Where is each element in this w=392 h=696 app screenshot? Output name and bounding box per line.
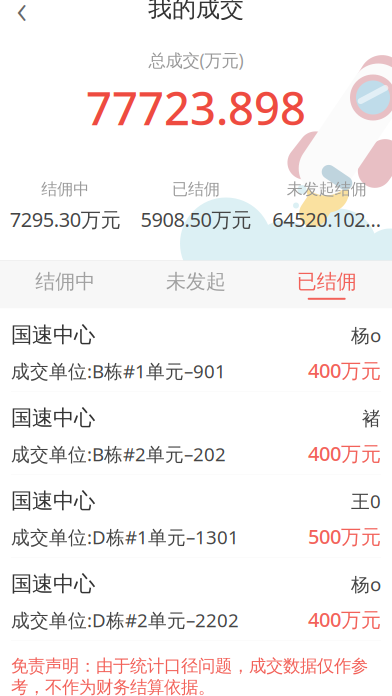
staticText: 国速中心 [11, 488, 95, 514]
button[interactable]: 国速中心 [0, 640, 392, 696]
button[interactable]: 已结佣 [261, 260, 392, 308]
button[interactable]: 国速中心 [0, 308, 392, 391]
staticText: 国速中心 [11, 654, 95, 680]
staticText: 杨o [351, 572, 381, 596]
button[interactable]: 国速中心 [0, 557, 392, 640]
staticText: 总成交(万元) [148, 48, 243, 71]
staticText: 400万元 [308, 440, 381, 467]
button[interactable]: Back [0, 0, 44, 30]
staticText: 64520.102… [272, 206, 381, 232]
staticText: 成交单位:D栋#1单元–1301 [11, 525, 239, 549]
staticText: 成交单位:D栋#3单元–1102 [11, 691, 239, 696]
staticText: 我的成交 [148, 0, 244, 23]
staticText: 结佣中 [41, 179, 89, 199]
button[interactable]: 国速中心 [0, 391, 392, 474]
staticText: 已结佣 [172, 179, 220, 199]
staticText: 王 [362, 656, 381, 679]
staticText: 7295.30万元 [10, 206, 121, 232]
button[interactable]: 国速中心 [0, 474, 392, 557]
staticText: 免责声明：由于统计口径问题，成交数据仅作参考，不作为财务结算依据。 [11, 655, 368, 696]
staticText: 400万元 [308, 606, 381, 633]
staticText: 400万元 [308, 357, 381, 384]
staticText: 77723.898 [86, 77, 306, 138]
staticText: 已结佣 [297, 269, 357, 294]
staticText: 国速中心 [11, 322, 95, 348]
staticText: ‹ [16, 0, 27, 35]
staticText: 结佣中 [35, 269, 95, 294]
staticText: 未发起 [166, 269, 226, 294]
button[interactable]: 结佣中 [0, 260, 131, 308]
staticText: 500万元 [308, 523, 381, 550]
staticText: 成交单位:B栋#2单元–202 [11, 442, 226, 466]
staticText: 国速中心 [11, 405, 95, 431]
staticText: 成交单位:B栋#1单元–901 [11, 359, 226, 383]
staticText: 王0 [351, 489, 381, 513]
staticText: 未发起结佣 [287, 179, 367, 199]
staticText: 杨o [351, 323, 381, 347]
staticText: 5908.50万元 [140, 206, 251, 232]
staticText: 成交单位:D栋#2单元–2202 [11, 608, 239, 632]
button[interactable]: 未发起 [131, 260, 261, 308]
staticText: 褚 [362, 407, 381, 430]
staticText: 国速中心 [11, 571, 95, 597]
